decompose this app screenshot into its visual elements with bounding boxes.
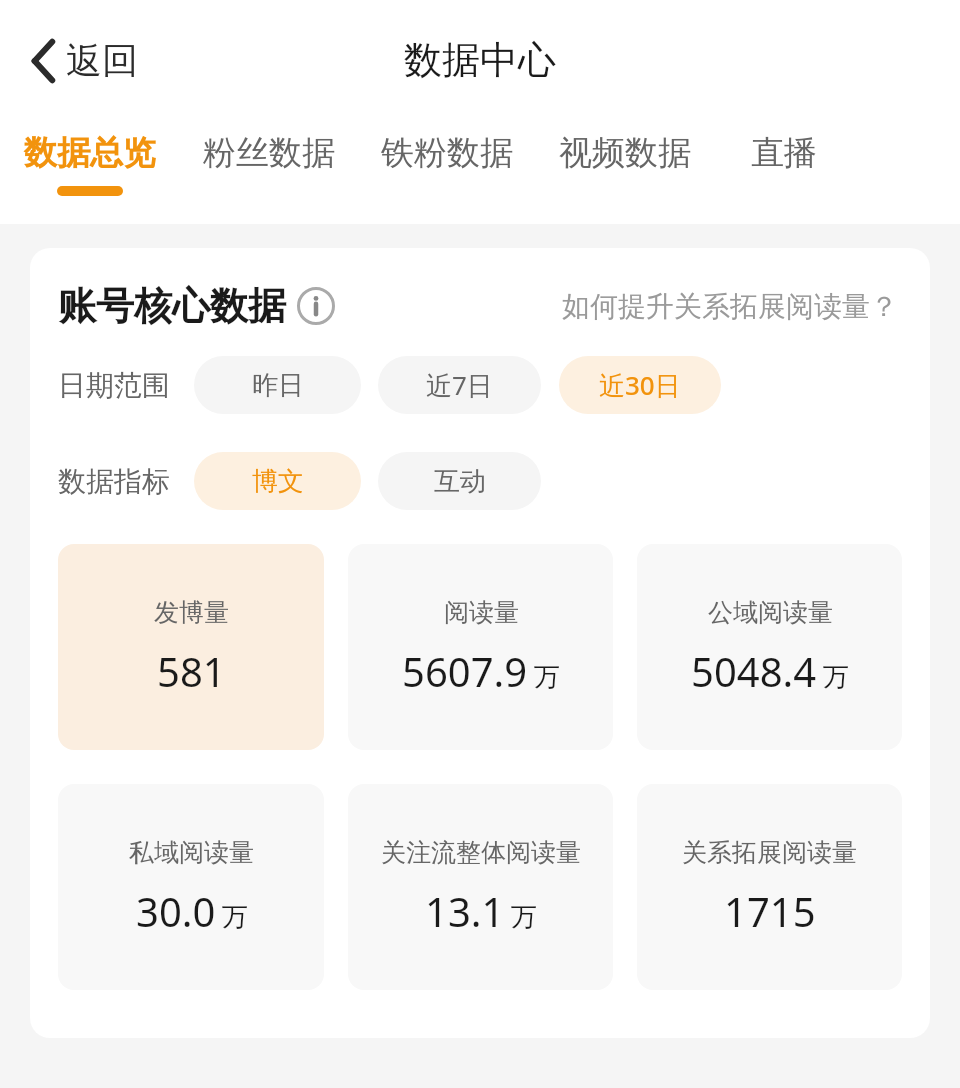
staticText: 互动 — [434, 465, 486, 498]
button[interactable]: 私域阅读量 — [58, 784, 324, 990]
button[interactable]: 关注流整体阅读量 — [348, 784, 613, 990]
staticText: 博文 — [252, 465, 304, 498]
staticText: 关注流整体阅读量 — [381, 837, 581, 868]
button[interactable]: 直播 — [714, 120, 854, 224]
button[interactable]: 博文 — [194, 452, 361, 510]
staticText: 30.0 — [136, 884, 216, 938]
staticText: 近30日 — [599, 367, 681, 403]
staticText: 万 — [511, 901, 537, 934]
staticText: 581 — [157, 644, 226, 698]
staticText: 如何提升关系拓展阅读量？ — [562, 289, 898, 324]
staticText: 视频数据 — [559, 132, 691, 174]
button[interactable]: 关系拓展阅读量 — [637, 784, 902, 990]
staticText: 阅读量 — [444, 597, 519, 628]
button[interactable]: 昨日 — [194, 356, 361, 414]
staticText: 万 — [534, 661, 560, 694]
staticText: 直播 — [751, 132, 817, 174]
staticText: 万 — [222, 901, 248, 934]
staticText: 粉丝数据 — [203, 132, 335, 174]
staticText: 近7日 — [426, 367, 493, 403]
staticText: 私域阅读量 — [129, 837, 254, 868]
button[interactable]: 近30日 — [559, 356, 721, 414]
staticText: 5048.4 — [691, 644, 817, 698]
button[interactable]: 返回 — [24, 32, 146, 89]
staticText: 关系拓展阅读量 — [682, 837, 857, 868]
staticText: 日期范围 — [58, 368, 170, 403]
button[interactable]: 阅读量 — [348, 544, 613, 750]
staticText: 数据指标 — [58, 464, 170, 499]
button[interactable]: 粉丝数据 — [180, 120, 358, 224]
staticText: 数据中心 — [404, 36, 556, 84]
button[interactable]: 发博量 — [58, 544, 324, 750]
staticText: 发博量 — [154, 597, 229, 628]
button[interactable]: 互动 — [378, 452, 541, 510]
staticText: 13.1 — [425, 884, 505, 938]
button[interactable]: 说明 — [296, 286, 336, 326]
staticText: 返回 — [66, 38, 138, 83]
button[interactable]: 公域阅读量 — [637, 544, 902, 750]
button[interactable]: 数据总览 — [0, 120, 180, 224]
staticText: 铁粉数据 — [381, 132, 513, 174]
button[interactable]: 视频数据 — [536, 120, 714, 224]
staticText: 公域阅读量 — [708, 597, 833, 628]
staticText: 账号核心数据 — [58, 282, 286, 330]
staticText: 昨日 — [252, 369, 304, 402]
staticText: 万 — [823, 661, 849, 694]
button[interactable]: 近7日 — [378, 356, 541, 414]
button[interactable]: 如何提升关系拓展阅读量？ — [558, 285, 902, 328]
staticText: 数据总览 — [24, 132, 156, 174]
staticText: 5607.9 — [402, 644, 528, 698]
staticText: 1715 — [724, 884, 816, 938]
button[interactable]: 铁粉数据 — [358, 120, 536, 224]
